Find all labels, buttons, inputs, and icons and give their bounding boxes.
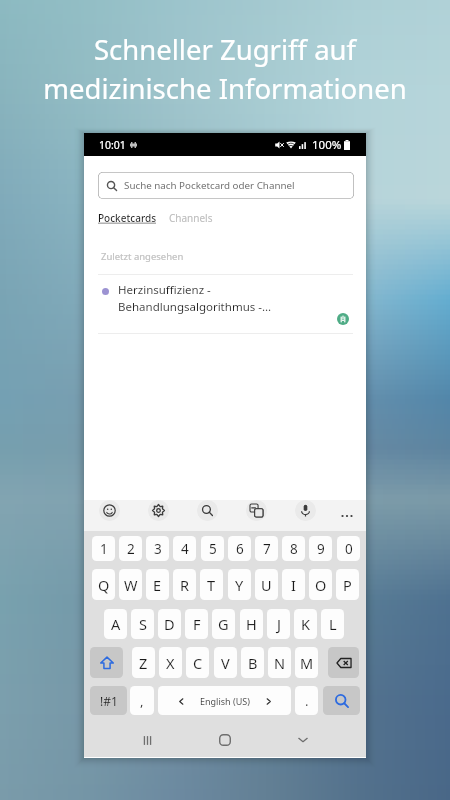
button[interactable]: Keyboard tool bbox=[99, 500, 120, 521]
button[interactable]: G bbox=[212, 609, 235, 639]
staticText: , bbox=[140, 692, 144, 710]
button[interactable]: W bbox=[119, 569, 142, 600]
staticText: 5 bbox=[209, 540, 217, 558]
button[interactable]: Keyboard tool bbox=[148, 500, 169, 521]
button[interactable]: D bbox=[158, 609, 181, 639]
button[interactable]: Keyboard tool bbox=[246, 500, 267, 521]
staticText: M bbox=[300, 653, 314, 673]
staticText: E bbox=[153, 575, 162, 595]
staticText: 100% bbox=[312, 137, 342, 153]
staticText: 8 bbox=[290, 540, 298, 558]
button[interactable]: , bbox=[130, 686, 154, 715]
staticText: 2 bbox=[127, 540, 135, 558]
staticText: K bbox=[301, 614, 310, 634]
staticText: S bbox=[139, 614, 147, 634]
staticText: Y bbox=[235, 575, 244, 595]
button[interactable]: M bbox=[295, 647, 318, 678]
staticText: D bbox=[164, 614, 175, 634]
button[interactable]: Language bbox=[158, 686, 291, 715]
staticText: F bbox=[193, 614, 201, 634]
button[interactable]: Pocketcards bbox=[98, 211, 156, 225]
staticText: R bbox=[180, 575, 190, 595]
button[interactable]: X bbox=[159, 647, 182, 678]
staticText: J bbox=[277, 614, 281, 634]
button[interactable]: Q bbox=[92, 569, 115, 600]
button[interactable]: 1 bbox=[92, 536, 115, 561]
staticText: B bbox=[248, 653, 258, 673]
button[interactable]: B bbox=[241, 647, 264, 678]
button[interactable]: 4 bbox=[173, 536, 196, 561]
button[interactable]: Recents bbox=[132, 725, 162, 755]
button[interactable]: Channels bbox=[169, 211, 213, 225]
staticText: 9 bbox=[317, 540, 325, 558]
staticText: 1 bbox=[100, 540, 108, 558]
staticText: Schneller Zugriff auf medizinische Infor… bbox=[43, 31, 407, 107]
button[interactable]: Hide keyboard bbox=[288, 725, 318, 755]
button[interactable]: K bbox=[294, 609, 317, 639]
button[interactable]: P bbox=[336, 569, 359, 600]
button[interactable]: J bbox=[267, 609, 290, 639]
button[interactable]: Suche nach Pocketcard oder Channel bbox=[98, 172, 354, 199]
staticText: 10:01 bbox=[99, 138, 126, 152]
staticText: U bbox=[261, 575, 272, 595]
button[interactable]: Backspace bbox=[328, 647, 359, 678]
staticText: N bbox=[274, 653, 286, 673]
staticText: 7 bbox=[263, 540, 271, 558]
button[interactable]: 7 bbox=[255, 536, 278, 561]
staticText: Suche nach Pocketcard oder Channel bbox=[124, 179, 295, 192]
button[interactable]: 3 bbox=[146, 536, 169, 561]
staticText: C bbox=[193, 653, 203, 673]
button[interactable]: C bbox=[186, 647, 209, 678]
button[interactable]: R bbox=[173, 569, 196, 600]
button[interactable]: 9 bbox=[309, 536, 332, 561]
staticText: V bbox=[221, 653, 230, 673]
staticText: !#1 bbox=[100, 693, 118, 709]
button[interactable]: I bbox=[282, 569, 305, 600]
button[interactable]: E bbox=[146, 569, 169, 600]
button[interactable]: More options bbox=[338, 507, 356, 525]
staticText: Pocketcards bbox=[98, 211, 156, 225]
button[interactable]: V bbox=[214, 647, 237, 678]
staticText: I bbox=[291, 575, 296, 595]
staticText: 0 bbox=[345, 540, 353, 558]
button[interactable]: A bbox=[104, 609, 127, 639]
button[interactable]: 2 bbox=[119, 536, 142, 561]
button[interactable]: Herzinsuffizienz - Behandlungsalgorithmu… bbox=[84, 275, 366, 333]
button[interactable]: O bbox=[309, 569, 332, 600]
button[interactable]: !#1 bbox=[90, 686, 127, 715]
staticText: 4 bbox=[181, 540, 189, 558]
staticText: 3 bbox=[154, 540, 162, 558]
button[interactable]: U bbox=[255, 569, 278, 600]
button[interactable]: T bbox=[200, 569, 223, 600]
button[interactable]: Shift bbox=[90, 647, 123, 678]
button[interactable]: . bbox=[295, 686, 318, 715]
button[interactable]: 5 bbox=[201, 536, 224, 561]
staticText: O bbox=[315, 575, 327, 595]
staticText: P bbox=[343, 575, 352, 595]
button[interactable]: F bbox=[185, 609, 208, 639]
button[interactable]: 8 bbox=[282, 536, 305, 561]
button[interactable]: N bbox=[268, 647, 291, 678]
button[interactable]: 6 bbox=[228, 536, 251, 561]
button[interactable]: Search bbox=[323, 686, 360, 715]
button[interactable]: S bbox=[131, 609, 154, 639]
staticText: Q bbox=[98, 575, 110, 595]
button[interactable]: Home bbox=[210, 725, 240, 755]
staticText: Herzinsuffizienz - Behandlungsalgorithmu… bbox=[118, 282, 272, 314]
staticText: G bbox=[218, 614, 229, 634]
button[interactable]: 0 bbox=[337, 536, 360, 561]
staticText: X bbox=[166, 653, 175, 673]
button[interactable]: Keyboard tool bbox=[295, 500, 316, 521]
button[interactable]: Keyboard tool bbox=[197, 500, 218, 521]
staticText: A bbox=[111, 614, 121, 634]
button[interactable]: L bbox=[321, 609, 344, 639]
button[interactable]: Z bbox=[132, 647, 155, 678]
button[interactable]: H bbox=[240, 609, 263, 639]
staticText: Z bbox=[139, 653, 148, 673]
staticText: English (US) bbox=[200, 695, 250, 707]
staticText: H bbox=[246, 614, 257, 634]
staticText: W bbox=[124, 575, 138, 595]
staticText: L bbox=[329, 614, 337, 634]
staticText: T bbox=[207, 575, 216, 595]
button[interactable]: Y bbox=[228, 569, 251, 600]
